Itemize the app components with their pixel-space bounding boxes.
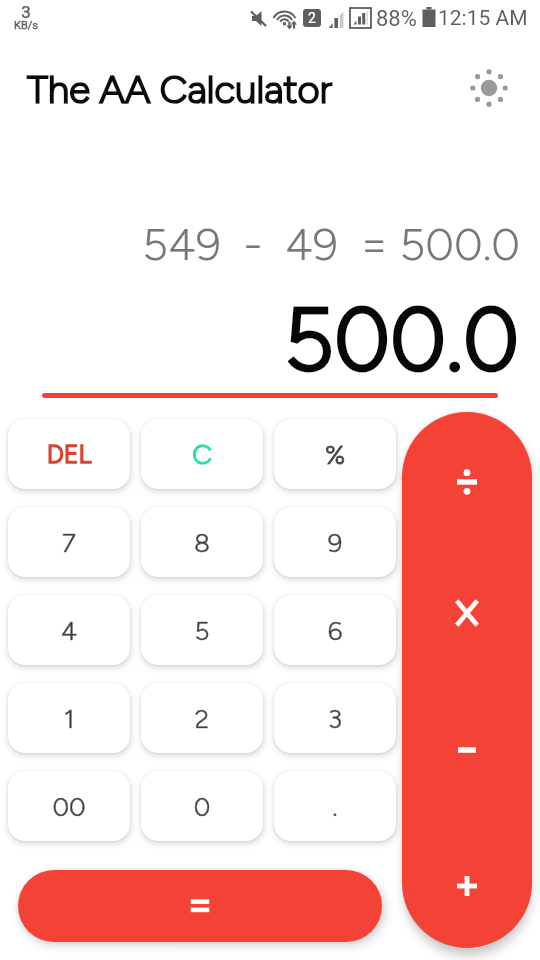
staticText: 4 — [49, 615, 89, 646]
staticText: 6 — [315, 615, 355, 646]
staticText: 4 — [49, 615, 89, 646]
staticText: 00 — [49, 791, 89, 822]
staticText: 7 — [49, 527, 89, 558]
staticText: 3 — [19, 2, 33, 22]
button[interactable]: 0 — [141, 771, 263, 841]
staticText: 549 - 49 = 500.0 — [0, 217, 520, 271]
button[interactable]: 9 — [274, 507, 396, 577]
staticText: KB/s — [12, 19, 40, 32]
staticText: 88% — [376, 6, 417, 32]
staticText: % — [317, 439, 353, 470]
button[interactable]: Brightness — [464, 63, 513, 112]
button[interactable]: 7 — [8, 507, 130, 577]
button[interactable]: Subtract — [402, 683, 532, 817]
staticText: 8 — [182, 527, 222, 558]
button[interactable]: 00 — [8, 771, 130, 841]
staticText: 8 — [182, 527, 222, 558]
button[interactable]: 1 — [8, 683, 130, 753]
staticText: 12:15 AM — [438, 6, 528, 31]
staticText: 3 — [315, 703, 355, 734]
staticText: 9 — [315, 527, 355, 558]
staticText: 5 — [182, 615, 222, 646]
staticText: 500.0 — [0, 286, 519, 392]
button[interactable]: 3 — [274, 683, 396, 753]
staticText: 500.0 — [0, 286, 519, 392]
button[interactable]: DEL — [8, 419, 130, 489]
button[interactable]: Equals — [18, 870, 382, 942]
staticText: 1 — [49, 703, 89, 734]
button[interactable]: 8 — [141, 507, 263, 577]
staticText: 7 — [49, 527, 89, 558]
staticText: 0 — [182, 791, 222, 822]
button[interactable]: The AA Calculator — [27, 66, 367, 113]
staticText: 1 — [49, 703, 89, 734]
button[interactable]: Divide — [402, 415, 532, 549]
button[interactable]: Add — [402, 819, 532, 948]
button[interactable]: 6 — [274, 595, 396, 665]
button[interactable]: 4 — [8, 595, 130, 665]
staticText: 9 — [315, 527, 355, 558]
staticText: 2 — [308, 10, 316, 26]
staticText: KB/s — [12, 19, 40, 32]
staticText: 3 — [19, 2, 33, 22]
staticText: 2 — [182, 703, 222, 734]
staticText: The AA Calculator — [27, 66, 367, 113]
staticText: 5 — [182, 615, 222, 646]
staticText: DEL — [39, 439, 99, 469]
staticText: 3 — [315, 703, 355, 734]
button[interactable]: C — [141, 419, 263, 489]
staticText: 00 — [49, 791, 89, 822]
staticText: C — [185, 437, 219, 471]
staticText: 0 — [182, 791, 222, 822]
button[interactable]: Multiply — [402, 546, 532, 680]
button[interactable]: % — [274, 419, 396, 489]
button[interactable]: 2 — [141, 683, 263, 753]
staticText: . — [315, 791, 355, 822]
staticText: 2 — [182, 703, 222, 734]
button[interactable]: . — [274, 771, 396, 841]
staticText: % — [317, 439, 353, 470]
staticText: DEL — [39, 439, 99, 469]
button[interactable]: 5 — [141, 595, 263, 665]
staticText: 6 — [315, 615, 355, 646]
staticText: C — [185, 437, 219, 471]
staticText: The AA Calculator — [27, 66, 367, 113]
staticText: . — [315, 791, 355, 822]
